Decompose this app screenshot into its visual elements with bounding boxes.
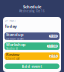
- staticText: 11:30: [48, 44, 57, 48]
- staticText: 9:00: [50, 34, 57, 38]
- staticText: Today: [4, 23, 16, 29]
- button[interactable]: Add event: [4, 63, 59, 69]
- staticText: 2:15: [50, 54, 57, 58]
- button[interactable]: Standup: [4, 32, 59, 40]
- staticText: Client call: [6, 57, 20, 61]
- staticText: Studio B: [6, 47, 18, 51]
- staticText: Standup: [6, 32, 24, 37]
- staticText: Review: [6, 52, 19, 57]
- staticText: Add event: [21, 64, 42, 69]
- button[interactable]: Workshop: [4, 42, 59, 50]
- button[interactable]: Review: [4, 52, 59, 60]
- staticText: Wednesday, Oct 16: [19, 9, 45, 13]
- staticText: UP NEXT: [4, 19, 15, 22]
- staticText: Design team: [6, 37, 23, 41]
- staticText: Workshop: [6, 42, 26, 47]
- staticText: Schedule: [23, 4, 41, 9]
